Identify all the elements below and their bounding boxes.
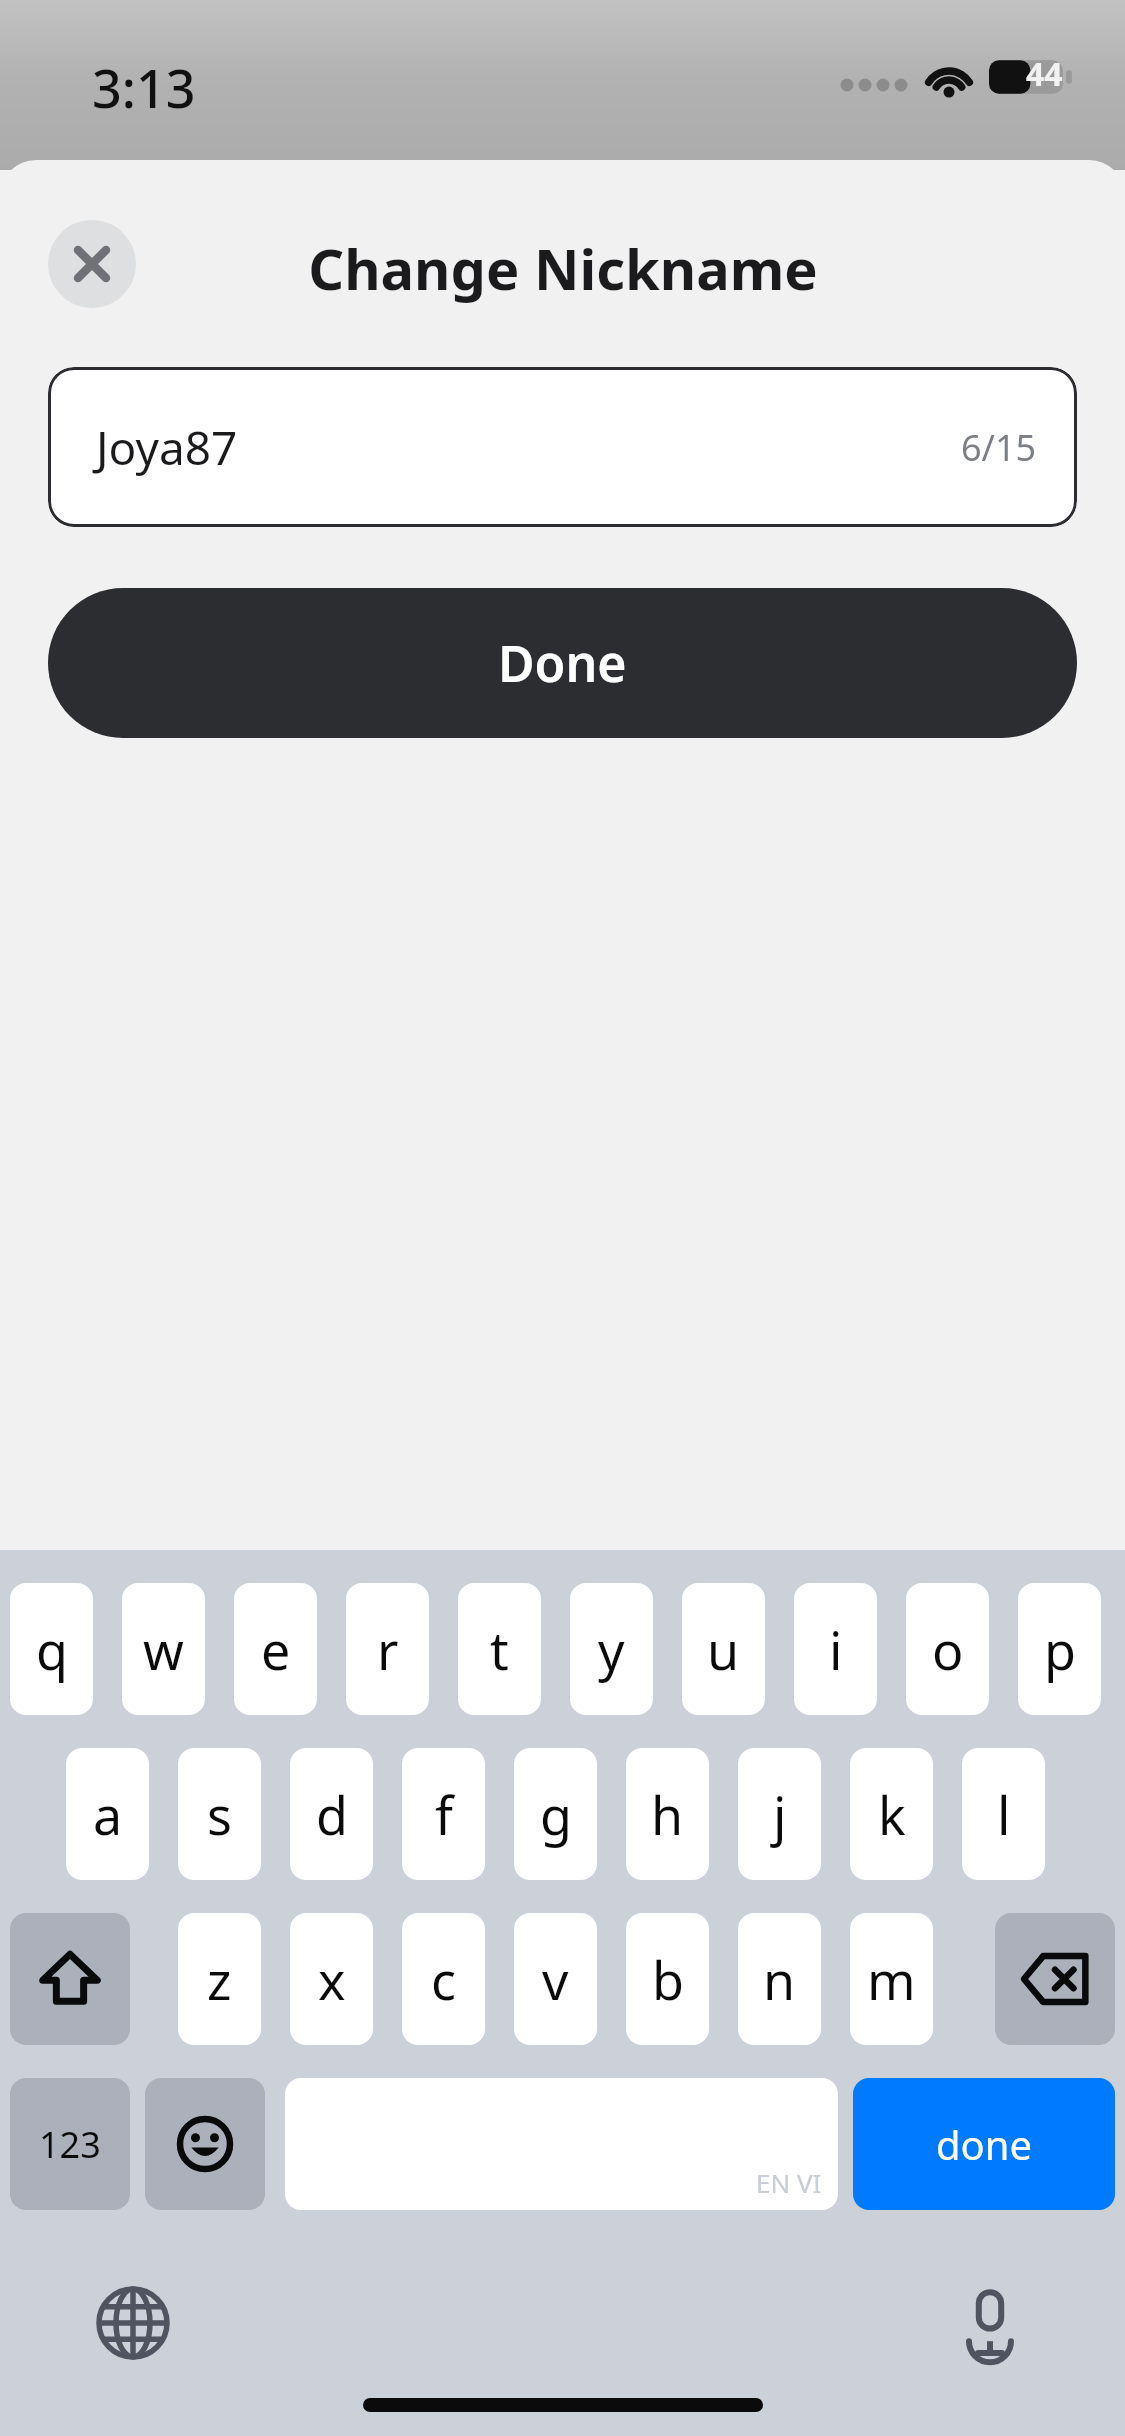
staticText: 3:13 [92, 52, 196, 123]
staticText: 44 [1026, 52, 1063, 96]
button[interactable]: Space [285, 2078, 838, 2210]
button[interactable]: Dictation [945, 2278, 1035, 2368]
button[interactable]: Shift [10, 1913, 130, 2045]
staticText: h [651, 1779, 684, 1850]
button[interactable]: b [626, 1913, 709, 2045]
button[interactable]: k [850, 1748, 933, 1880]
staticText: e [261, 1614, 291, 1685]
staticText: s [207, 1779, 232, 1850]
button[interactable]: t [458, 1583, 541, 1715]
staticText: 123 [39, 2120, 101, 2169]
staticText: 6/15 [961, 423, 1037, 472]
button[interactable]: Done [48, 588, 1077, 738]
button[interactable]: h [626, 1748, 709, 1880]
button[interactable]: g [514, 1748, 597, 1880]
staticText: Joya87 [96, 416, 238, 479]
button[interactable]: j [738, 1748, 821, 1880]
button[interactable]: o [906, 1583, 989, 1715]
button[interactable]: m [850, 1913, 933, 2045]
staticText: p [1044, 1614, 1076, 1685]
button[interactable]: p [1018, 1583, 1101, 1715]
button[interactable]: q [10, 1583, 93, 1715]
staticText: c [431, 1944, 456, 2015]
staticText: o [932, 1614, 964, 1685]
staticText: b [652, 1944, 684, 2015]
staticText: t [490, 1614, 509, 1685]
staticText: EN VI [756, 2165, 822, 2200]
button[interactable]: e [234, 1583, 317, 1715]
button[interactable]: Numbers [10, 2078, 130, 2210]
button[interactable]: s [178, 1748, 261, 1880]
button[interactable]: Backspace [995, 1913, 1115, 2045]
button[interactable]: f [402, 1748, 485, 1880]
staticText: u [707, 1614, 740, 1685]
button[interactable]: i [794, 1583, 877, 1715]
staticText: v [542, 1944, 569, 2015]
button[interactable]: Close [48, 220, 136, 308]
button[interactable]: l [962, 1748, 1045, 1880]
staticText: y [598, 1614, 625, 1685]
button[interactable]: u [682, 1583, 765, 1715]
button[interactable]: r [346, 1583, 429, 1715]
button[interactable]: c [402, 1913, 485, 2045]
staticText: x [318, 1944, 346, 2015]
staticText: q [36, 1614, 68, 1685]
staticText: k [878, 1779, 906, 1850]
staticText: l [997, 1779, 1011, 1850]
button[interactable]: Switch language [88, 2278, 178, 2368]
button[interactable]: a [66, 1748, 149, 1880]
button[interactable]: Joya87 [48, 367, 1077, 527]
staticText: n [763, 1944, 796, 2015]
staticText: m [867, 1944, 916, 2015]
staticText: a [93, 1779, 123, 1850]
staticText: d [316, 1779, 348, 1850]
button[interactable]: z [178, 1913, 261, 2045]
staticText: i [829, 1614, 843, 1685]
staticText: r [377, 1614, 399, 1685]
staticText: Done [498, 629, 627, 697]
button[interactable]: d [290, 1748, 373, 1880]
button[interactable]: y [570, 1583, 653, 1715]
button[interactable]: n [738, 1913, 821, 2045]
staticText: j [773, 1779, 787, 1850]
button[interactable]: x [290, 1913, 373, 2045]
staticText: g [540, 1779, 572, 1850]
staticText: z [207, 1944, 232, 2015]
button[interactable]: v [514, 1913, 597, 2045]
button[interactable]: Emoji [145, 2078, 265, 2210]
button[interactable]: done [853, 2078, 1115, 2210]
staticText: Change Nickname [308, 230, 818, 306]
staticText: w [143, 1614, 184, 1685]
staticText: f [435, 1779, 453, 1850]
button[interactable]: w [122, 1583, 205, 1715]
staticText: done [936, 2117, 1033, 2171]
